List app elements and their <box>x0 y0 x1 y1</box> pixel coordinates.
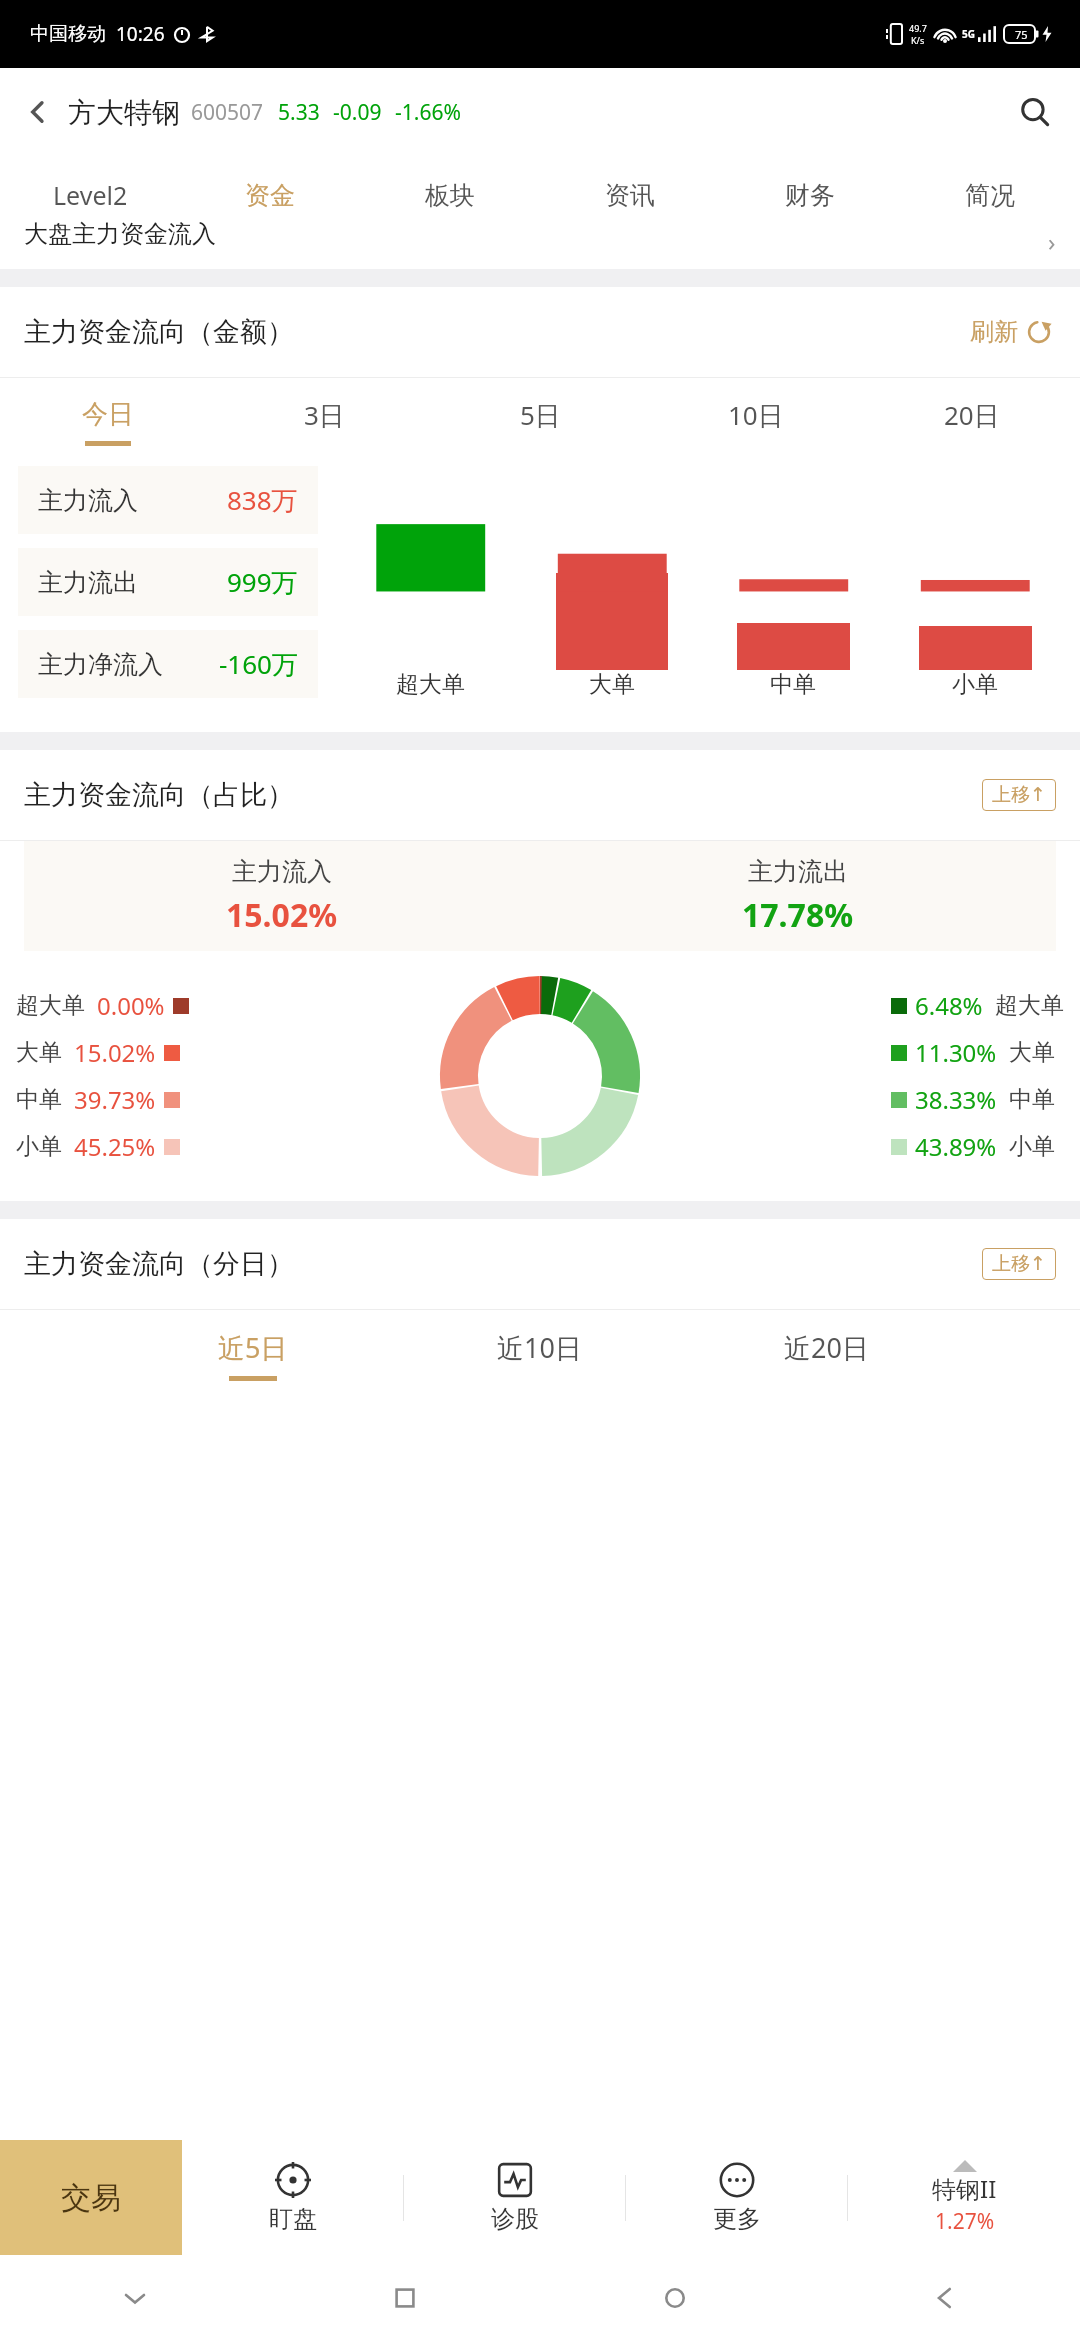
staticText: 0.00% <box>97 989 165 1022</box>
button[interactable]: v <box>0 2255 270 2340</box>
staticText: 中国移动 <box>30 22 106 46</box>
button[interactable]: 上移↑ <box>992 1252 1046 1276</box>
staticText: 超大单 <box>396 670 465 699</box>
staticText: 主力资金流向（分日） <box>24 1247 294 1281</box>
staticText: 49.7 <box>909 22 927 34</box>
button[interactable]: 财务 <box>720 155 900 235</box>
button[interactable]: 中单 <box>16 1083 180 1116</box>
staticText: 中单 <box>770 670 816 699</box>
button[interactable]: 更多 <box>626 2140 847 2255</box>
staticText: 大盘主力资金流入 <box>24 219 216 249</box>
button[interactable]: Level2 <box>0 155 180 235</box>
button[interactable]: 近10日 <box>396 1310 683 1400</box>
button[interactable]: 超大单 <box>16 989 189 1022</box>
staticText: 主力流出 <box>38 567 138 598</box>
staticText: -160万 <box>219 646 298 682</box>
staticText: 小单 <box>952 670 998 699</box>
staticText: 20日 <box>944 397 1000 433</box>
button[interactable]: 6.48% <box>891 989 1064 1022</box>
staticText: 板块 <box>425 180 475 211</box>
staticText: 大单 <box>1009 1038 1055 1067</box>
button[interactable]: 5日 <box>432 378 648 466</box>
button[interactable]: 资金 <box>180 155 360 235</box>
staticText: 诊股 <box>491 2204 539 2234</box>
button[interactable]: 10日 <box>648 378 864 466</box>
staticText: 刷新 <box>970 317 1018 347</box>
staticText: 近5日 <box>218 1329 288 1366</box>
staticText: 主力流入 <box>38 485 138 516</box>
staticText: 中单 <box>1009 1085 1055 1114</box>
staticText: 10日 <box>728 397 784 433</box>
button[interactable]: sq <box>270 2255 540 2340</box>
staticText: 43.89% <box>915 1130 997 1163</box>
staticText: 主力资金流向（占比） <box>24 778 294 812</box>
staticText: 盯盘 <box>269 2204 317 2234</box>
staticText: 1.27% <box>935 2207 995 2236</box>
staticText: 6.48% <box>915 989 983 1022</box>
button[interactable]: 11.30% <box>891 1036 1055 1069</box>
staticText: 5.33 <box>278 98 320 127</box>
staticText: 特钢II <box>932 2172 997 2205</box>
staticText: 更多 <box>713 2204 761 2234</box>
staticText: 大单 <box>589 670 635 699</box>
staticText: 75 <box>1015 27 1028 42</box>
staticText: 15.02% <box>74 1036 156 1069</box>
staticText: 11.30% <box>915 1036 997 1069</box>
button[interactable]: tr <box>810 2255 1080 2340</box>
button[interactable]: 今日 <box>0 378 216 466</box>
staticText: K/s <box>911 34 925 46</box>
staticText: 17.78% <box>742 893 854 937</box>
staticText: 方大特钢 <box>68 95 180 130</box>
button[interactable]: 资讯 <box>540 155 720 235</box>
staticText: 简况 <box>965 180 1015 211</box>
button[interactable]: 刷新 <box>966 313 1056 351</box>
button[interactable]: Back <box>14 88 62 136</box>
button[interactable]: 板块 <box>360 155 540 235</box>
button[interactable]: 38.33% <box>891 1083 1055 1116</box>
button[interactable]: 近5日 <box>110 1310 396 1400</box>
staticText: 小单 <box>1009 1132 1055 1161</box>
button[interactable]: Search <box>1008 85 1062 139</box>
button[interactable]: 交易 <box>0 2140 182 2255</box>
button[interactable]: 主力流入 <box>38 466 298 534</box>
button[interactable]: 20日 <box>864 378 1080 466</box>
button[interactable]: 主力净流入 <box>38 630 298 698</box>
staticText: 主力净流入 <box>38 649 163 680</box>
staticText: 近20日 <box>784 1329 869 1366</box>
button[interactable]: 主力流出 <box>38 548 298 616</box>
staticText: › <box>1048 225 1056 258</box>
staticText: -0.09 <box>333 98 382 127</box>
button[interactable]: 特钢II <box>848 2140 1080 2255</box>
staticText: 5G <box>962 27 975 41</box>
button[interactable]: 小单 <box>16 1130 180 1163</box>
staticText: 资金 <box>245 180 295 211</box>
staticText: 交易 <box>61 2179 121 2217</box>
staticText: 近10日 <box>497 1329 582 1366</box>
button[interactable]: ci <box>540 2255 810 2340</box>
staticText: 小单 <box>16 1132 62 1161</box>
button[interactable]: 诊股 <box>404 2140 625 2255</box>
staticText: 3日 <box>304 397 345 433</box>
button[interactable]: 3日 <box>216 378 432 466</box>
staticText: 10:26 <box>116 21 165 47</box>
staticText: 资讯 <box>605 180 655 211</box>
button[interactable]: 大单 <box>16 1036 180 1069</box>
staticText: 38.33% <box>915 1083 997 1116</box>
button[interactable]: 上移↑ <box>992 783 1046 807</box>
staticText: 超大单 <box>16 991 85 1020</box>
staticText: 今日 <box>82 398 134 431</box>
staticText: 600507 <box>191 98 264 127</box>
staticText: 中单 <box>16 1085 62 1114</box>
button[interactable]: 盯盘 <box>182 2140 403 2255</box>
button[interactable]: 近20日 <box>683 1310 970 1400</box>
staticText: -1.66% <box>395 98 461 127</box>
button[interactable]: 简况 <box>900 155 1080 235</box>
staticText: 999万 <box>227 564 298 600</box>
staticText: 39.73% <box>74 1083 156 1116</box>
staticText: 838万 <box>227 482 298 518</box>
staticText: 上移↑ <box>992 1252 1046 1276</box>
staticText: 财务 <box>785 180 835 211</box>
staticText: 主力流出 <box>748 856 848 887</box>
staticText: 上移↑ <box>992 783 1046 807</box>
button[interactable]: 43.89% <box>891 1130 1055 1163</box>
